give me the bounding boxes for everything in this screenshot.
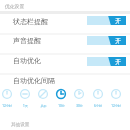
button[interactable] bbox=[0, 54, 130, 73]
button[interactable]: Interval option bbox=[91, 89, 105, 99]
button[interactable]: Interval option bbox=[18, 89, 32, 99]
staticText: 6小时 bbox=[94, 104, 102, 108]
staticText: 状态栏提醒 bbox=[13, 17, 48, 26]
staticText: 10分 bbox=[58, 104, 65, 108]
button[interactable]: Interval option bbox=[0, 89, 14, 99]
button[interactable]: Interval option bbox=[54, 89, 68, 99]
button[interactable]: 10分 bbox=[50, 104, 72, 111]
button[interactable]: Interval option bbox=[36, 89, 50, 99]
button[interactable] bbox=[0, 14, 130, 33]
staticText: 开 bbox=[115, 17, 121, 25]
staticText: 自动优化间隔 bbox=[13, 76, 55, 85]
button[interactable]: Interval option bbox=[72, 89, 86, 99]
button[interactable]: 从不 bbox=[32, 104, 54, 111]
staticText: 开 bbox=[115, 37, 121, 45]
staticText: 30分 bbox=[76, 104, 83, 108]
button[interactable] bbox=[0, 34, 130, 53]
button[interactable]: 6小时 bbox=[87, 104, 109, 111]
staticText: 开 bbox=[115, 58, 121, 66]
staticText: 其他设置 bbox=[11, 122, 30, 128]
staticText: 声音提醒 bbox=[13, 36, 41, 45]
button[interactable]: 30分 bbox=[68, 104, 90, 111]
button[interactable]: 12小时 bbox=[0, 104, 18, 111]
staticText: 从不 bbox=[40, 104, 47, 108]
staticText: 优化设置 bbox=[5, 3, 25, 9]
button[interactable]: Interval option bbox=[109, 89, 123, 99]
staticText: 1天 bbox=[23, 104, 28, 108]
staticText: 12小时 bbox=[111, 104, 121, 108]
button[interactable]: Toggle on bbox=[87, 57, 126, 66]
staticText: 12小时 bbox=[2, 104, 12, 108]
button[interactable] bbox=[0, 74, 130, 88]
staticText: 自动优化 bbox=[13, 56, 41, 65]
button[interactable]: Toggle on bbox=[87, 16, 126, 25]
button[interactable]: 12小时 bbox=[105, 104, 127, 111]
button[interactable]: 1天 bbox=[14, 104, 36, 111]
button[interactable]: Toggle on bbox=[87, 36, 126, 45]
